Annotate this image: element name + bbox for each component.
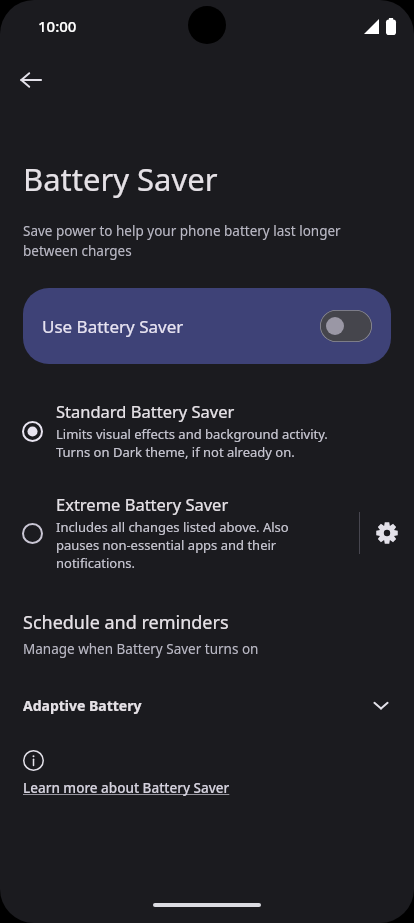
staticText: Adaptive Battery	[23, 696, 370, 715]
staticText: Schedule and reminders	[23, 610, 229, 635]
staticText: Battery Saver	[23, 158, 218, 200]
button[interactable]: Back	[9, 58, 53, 102]
staticText: Manage when Battery Saver turns on	[23, 640, 259, 658]
staticText: Use Battery Saver	[42, 315, 320, 338]
staticText: Standard Battery Saver	[56, 400, 235, 422]
staticText: Limits visual effects and background act…	[56, 425, 328, 461]
staticText: Save power to help your phone battery la…	[23, 222, 394, 260]
button[interactable]: Extreme Battery Saver	[0, 485, 359, 580]
button[interactable]: Learn more about Battery Saver	[0, 748, 414, 803]
button[interactable]: Extreme Battery Saver settings	[360, 506, 414, 560]
staticText: Extreme Battery Saver	[56, 493, 229, 515]
button[interactable]: Use Battery Saver	[23, 288, 391, 364]
staticText: Includes all changes listed above. Also …	[56, 518, 289, 572]
button[interactable]: Schedule and reminders	[0, 606, 414, 662]
staticText: Learn more about Battery Saver	[23, 779, 230, 797]
staticText: 10:00	[38, 16, 77, 36]
button[interactable]: Standard Battery Saver	[0, 392, 414, 469]
button[interactable]: Adaptive Battery	[0, 686, 414, 724]
